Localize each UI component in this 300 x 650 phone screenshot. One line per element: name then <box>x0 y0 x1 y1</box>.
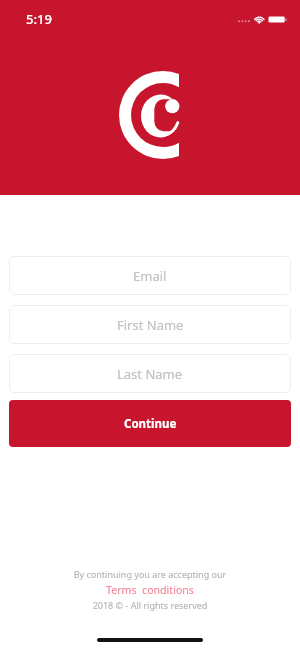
button[interactable]: Email <box>9 256 291 295</box>
staticText: First Name <box>117 316 184 334</box>
button[interactable]: Continue <box>9 400 291 447</box>
other: Logo <box>118 70 180 156</box>
button[interactable]: Last Name <box>9 354 291 393</box>
staticText: Email <box>133 267 167 285</box>
staticText: By continuing you are accepting our <box>0 568 300 580</box>
staticText: 5:19 <box>26 10 52 28</box>
button[interactable]: Terms conditions <box>0 583 300 597</box>
button[interactable]: First Name <box>9 305 291 344</box>
staticText: Terms conditions <box>106 583 194 597</box>
staticText: Continue <box>124 416 177 432</box>
staticText: 2018 © - All rights reserved <box>0 599 300 611</box>
staticText: Last Name <box>117 365 183 383</box>
